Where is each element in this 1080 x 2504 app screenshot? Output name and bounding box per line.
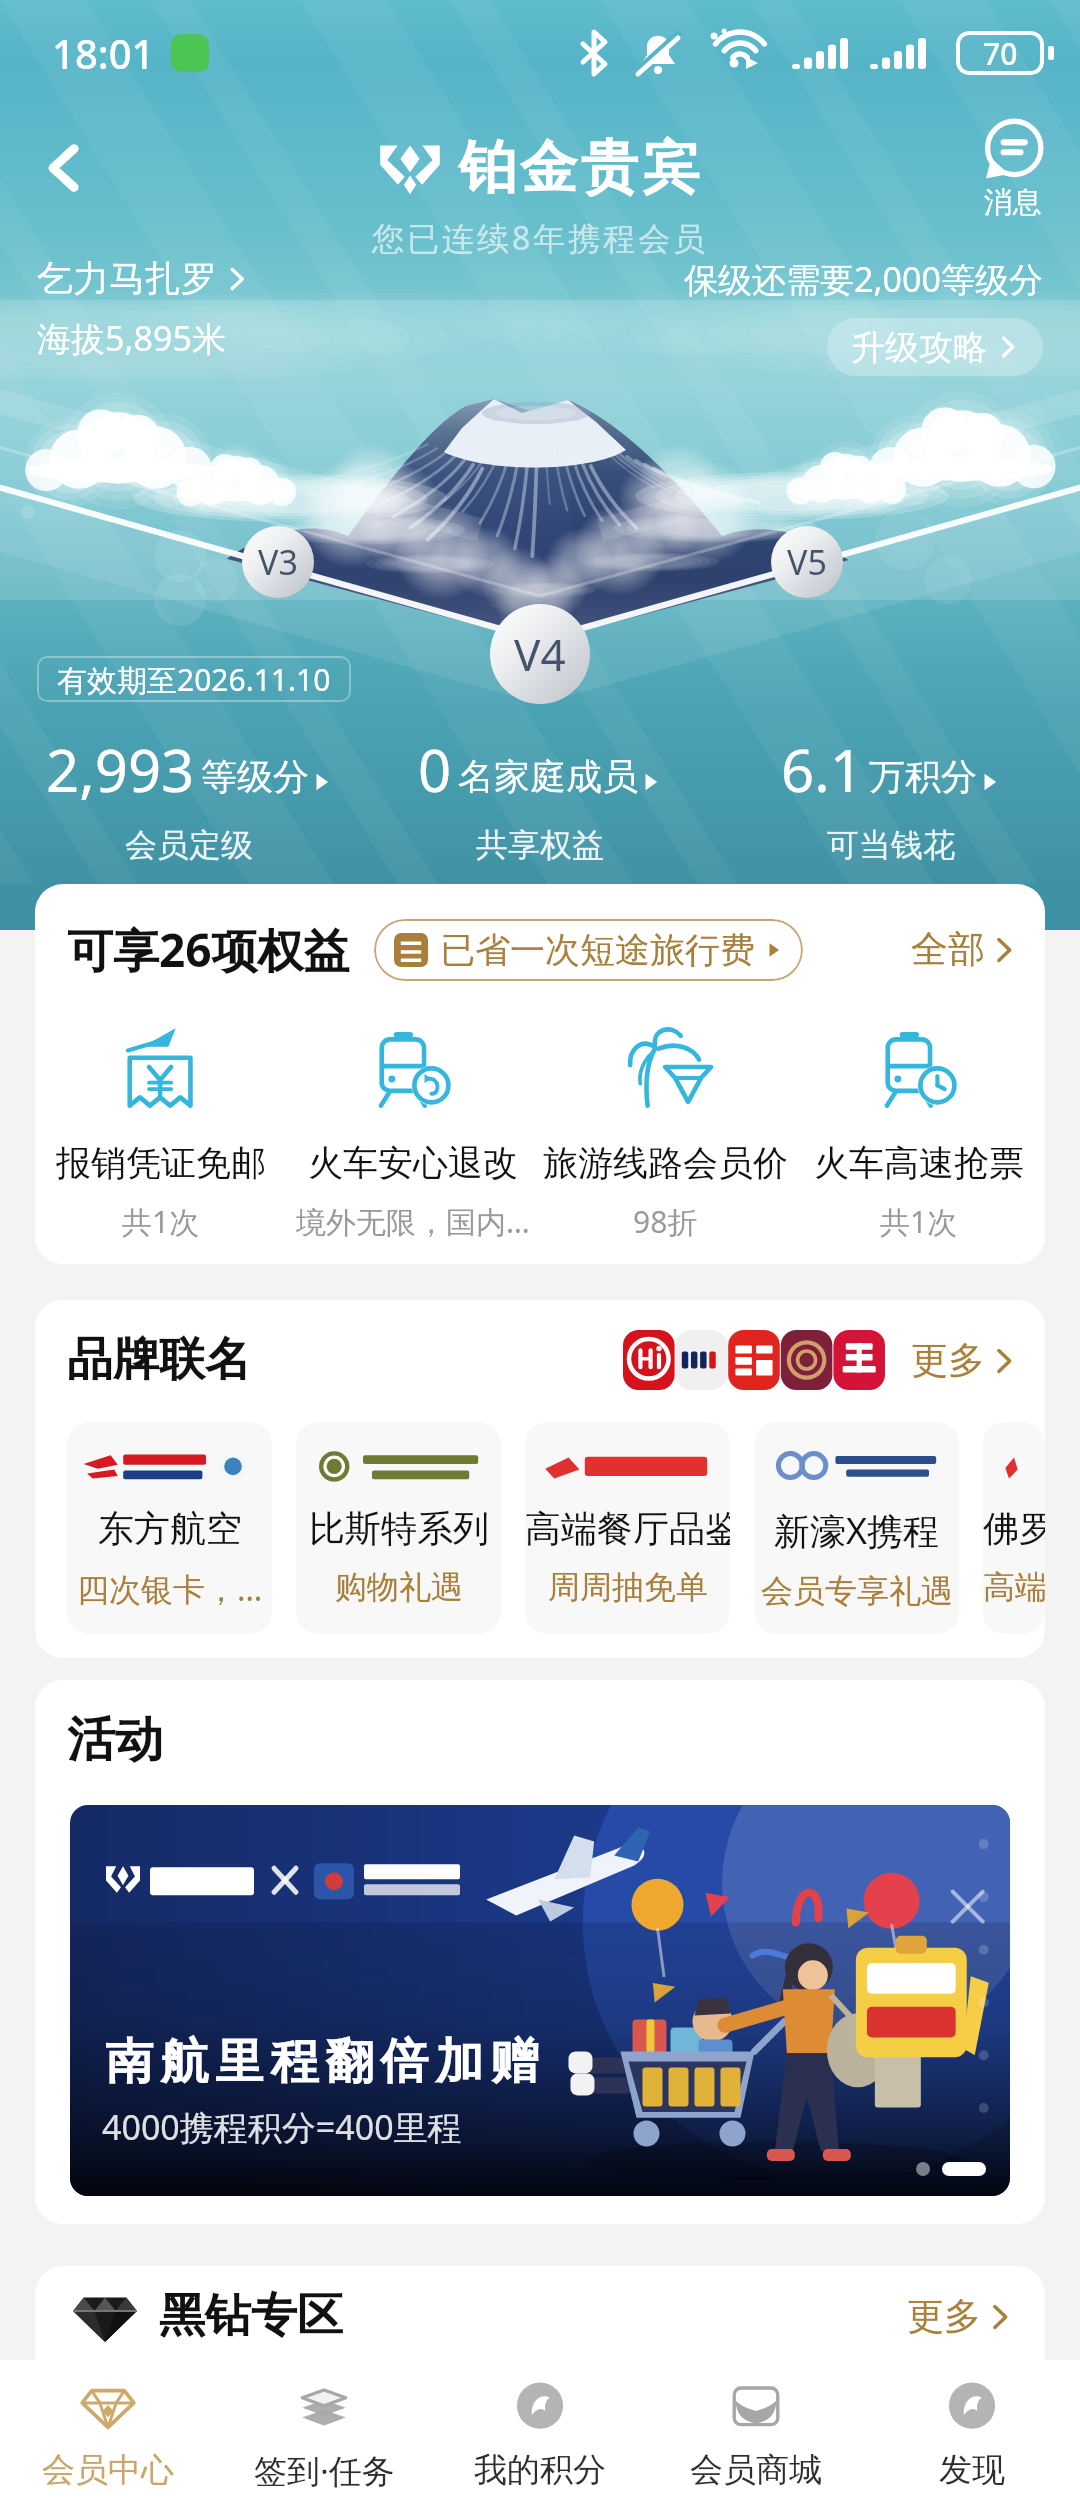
staticText: 高端餐厅品鉴 <box>525 1506 730 1551</box>
button[interactable]: 已省一次短途旅行费 <box>374 919 803 981</box>
staticText: 会员中心 <box>42 2449 174 2491</box>
staticText: 黑钻专区 <box>159 2287 343 2345</box>
staticText: 0 <box>418 730 452 809</box>
button[interactable]: 签到·任务 <box>216 2360 432 2504</box>
staticText: 活动 <box>67 1710 163 1770</box>
button[interactable]: 发现 <box>864 2360 1080 2504</box>
button[interactable]: V3 <box>242 526 314 598</box>
button[interactable]: 比斯特系列 <box>296 1422 501 1634</box>
staticText: 可当钱花 <box>827 825 955 865</box>
button[interactable]: V5 <box>771 526 843 598</box>
staticText: 火车安心退改 <box>308 1141 518 1185</box>
staticText: 高端 <box>983 1567 1045 1607</box>
staticText: 铂金贵宾 <box>457 132 701 204</box>
staticText: 更多 <box>911 1337 985 1384</box>
button[interactable]: 升级攻略 <box>827 318 1043 376</box>
staticText: 品牌联名 <box>67 1331 251 1389</box>
staticText: 名家庭成员 <box>458 754 638 799</box>
button[interactable]: 有效期至2026.11.10 <box>37 656 351 702</box>
staticText: V5 <box>787 539 827 585</box>
staticText: 四次银卡，… <box>77 1567 263 1611</box>
staticText: 升级攻略 <box>851 326 987 369</box>
staticText: 报销凭证免邮 <box>56 1141 266 1185</box>
staticText: 发现 <box>939 2449 1005 2491</box>
button[interactable]: 2,993 <box>14 730 364 865</box>
button[interactable]: 报销凭证免邮 <box>35 1021 287 1242</box>
staticText: 2,993 <box>46 730 195 809</box>
button[interactable]: 全部 <box>911 926 1017 973</box>
button[interactable]: 东方航空 <box>67 1422 272 1634</box>
button[interactable]: 南航里程翻倍加赠 <box>70 1805 1010 2196</box>
staticText: 新濠X携程 <box>774 1506 940 1555</box>
staticText: 比斯特系列 <box>309 1506 489 1551</box>
button[interactable]: 火车高速抢票 <box>792 1021 1045 1242</box>
button[interactable]: 更多 <box>911 1337 1017 1384</box>
staticText: 南航里程翻倍加赠 <box>102 2032 542 2092</box>
staticText: 佛罗 <box>983 1506 1045 1551</box>
staticText: 海拔5,895米 <box>37 315 226 361</box>
button[interactable]: 0 <box>364 730 715 865</box>
staticText: 会员商城 <box>690 2449 822 2491</box>
button[interactable]: 会员商城 <box>648 2360 864 2504</box>
staticText: 我的积分 <box>474 2449 606 2491</box>
staticText: 保级还需要2,000等级分 <box>684 256 1043 302</box>
staticText: 购物礼遇 <box>335 1567 463 1607</box>
staticText: 已省一次短途旅行费 <box>440 928 755 972</box>
button[interactable]: 6.1 <box>715 730 1066 865</box>
staticText: 共1次 <box>122 1201 200 1242</box>
button[interactable]: 乞力马扎罗 <box>37 256 249 301</box>
staticText: 4000携程积分=400里程 <box>102 2104 462 2150</box>
button[interactable]: 高端餐厅品鉴 <box>525 1422 730 1634</box>
staticText: 可享26项权益 <box>67 918 350 981</box>
staticText: 6.1 <box>781 730 863 809</box>
button[interactable]: 新濠X携程 <box>754 1422 959 1634</box>
button[interactable]: 我的积分 <box>432 2360 648 2504</box>
button[interactable]: Messages <box>963 120 1063 221</box>
staticText: 共享权益 <box>476 825 604 865</box>
staticText: 旅游线路会员价 <box>543 1141 788 1185</box>
button[interactable]: Back <box>14 118 114 218</box>
staticText: 消息 <box>984 184 1042 221</box>
button[interactable]: 更多 <box>907 2293 1013 2340</box>
button[interactable]: 火车安心退改 <box>287 1021 539 1242</box>
staticText: 18:01 <box>52 26 155 80</box>
staticText: 全部 <box>911 926 985 973</box>
staticText: 乞力马扎罗 <box>37 256 217 301</box>
staticText: 98折 <box>633 1201 698 1242</box>
staticText: 更多 <box>907 2293 981 2340</box>
button[interactable]: V4 <box>490 604 590 704</box>
staticText: 会员专享礼遇 <box>761 1571 953 1611</box>
staticText: 有效期至2026.11.10 <box>57 659 331 700</box>
staticText: 您已连续8年携程会员 <box>372 216 709 260</box>
staticText: 会员定级 <box>125 825 253 865</box>
staticText: 万积分 <box>869 754 977 799</box>
staticText: 签到·任务 <box>254 2448 395 2493</box>
staticText: 东方航空 <box>98 1506 242 1551</box>
button[interactable]: 旅游线路会员价 <box>539 1021 792 1242</box>
button[interactable]: 会员中心 <box>0 2360 216 2504</box>
staticText: V4 <box>514 624 566 684</box>
staticText: 共1次 <box>880 1201 958 1242</box>
staticText: V3 <box>258 539 298 585</box>
button[interactable]: 佛罗 <box>983 1422 1045 1634</box>
staticText: 火车高速抢票 <box>814 1141 1024 1185</box>
staticText: 70 <box>983 33 1018 74</box>
staticText: 境外无限，国内… <box>296 1201 530 1242</box>
staticText: 周周抽免单 <box>548 1567 708 1607</box>
staticText: 等级分 <box>201 754 309 799</box>
